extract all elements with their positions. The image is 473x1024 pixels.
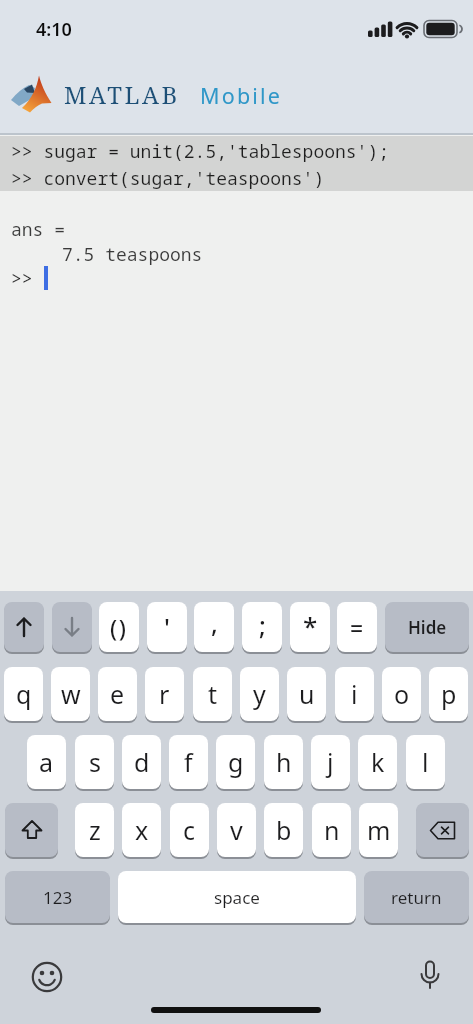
button[interactable]: o [382, 667, 421, 723]
staticText: , [211, 606, 218, 640]
staticText: b [276, 813, 292, 847]
staticText: r [159, 677, 170, 711]
staticText: 4:10 [36, 17, 72, 42]
staticText: s [89, 745, 101, 779]
button[interactable]: () [99, 602, 139, 654]
button[interactable]: j [311, 735, 350, 791]
button[interactable]: u [287, 667, 326, 723]
button[interactable]: q [4, 667, 43, 723]
button[interactable]: b [264, 803, 303, 859]
button[interactable]: , [194, 602, 234, 654]
button[interactable]: n [312, 803, 351, 859]
staticText: ' [164, 610, 170, 644]
staticText: >> [11, 266, 33, 291]
button[interactable]: ' [147, 602, 187, 654]
button[interactable]: k [358, 735, 397, 791]
button[interactable]: t [193, 667, 232, 723]
staticText: q [16, 677, 32, 711]
button[interactable]: g [216, 735, 255, 791]
button[interactable] [5, 803, 58, 859]
button[interactable] [52, 602, 92, 654]
staticText: = [350, 612, 364, 643]
staticText: p [441, 677, 457, 711]
button[interactable] [30, 960, 64, 994]
button[interactable]: f [169, 735, 208, 791]
button[interactable]: p [429, 667, 468, 723]
button[interactable] [415, 958, 445, 996]
button[interactable]: s [75, 735, 114, 791]
staticText: 7.5 teaspoons [62, 242, 203, 267]
staticText: () [110, 612, 128, 643]
staticText: z [89, 813, 101, 847]
staticText: t [208, 677, 218, 711]
button[interactable]: y [240, 667, 279, 723]
staticText: u [299, 677, 315, 711]
staticText: f [184, 745, 193, 779]
button[interactable]: h [264, 735, 303, 791]
button[interactable]: w [51, 667, 90, 723]
button[interactable]: m [359, 803, 398, 859]
staticText: c [183, 813, 196, 847]
staticText: MATLAB [64, 78, 180, 111]
staticText: m [367, 813, 391, 847]
button[interactable]: ; [242, 602, 282, 654]
staticText: a [39, 745, 54, 779]
button[interactable]: 123 [5, 871, 110, 925]
staticText: y [253, 677, 266, 711]
staticText: ; [259, 608, 266, 642]
staticText: v [230, 813, 243, 847]
staticText: >> convert(sugar,'teaspoons') [11, 166, 325, 191]
staticText: e [110, 677, 125, 711]
staticText: Mobile [200, 81, 283, 110]
staticText: * [303, 608, 318, 643]
staticText: d [134, 745, 150, 779]
staticText: n [324, 813, 340, 847]
button[interactable] [4, 602, 44, 654]
button[interactable]: e [98, 667, 137, 723]
staticText: j [327, 745, 334, 779]
button[interactable]: return [364, 871, 469, 925]
button[interactable]: c [170, 803, 209, 859]
button[interactable]: l [406, 735, 445, 791]
staticText: w [61, 677, 81, 711]
staticText: x [135, 813, 149, 847]
button[interactable]: d [122, 735, 161, 791]
button[interactable]: z [75, 803, 114, 859]
staticText: return [391, 886, 442, 909]
staticText: space [214, 886, 260, 909]
staticText: h [276, 745, 292, 779]
staticText: g [228, 745, 244, 779]
staticText: l [422, 745, 429, 779]
button[interactable]: * [290, 602, 330, 654]
button[interactable]: = [337, 602, 377, 654]
button[interactable]: i [335, 667, 374, 723]
staticText: >> sugar = unit(2.5,'tablespoons'); [11, 139, 389, 164]
staticText: i [351, 677, 358, 711]
staticText: Hide [408, 616, 447, 639]
button[interactable]: r [145, 667, 184, 723]
staticText: 123 [43, 886, 73, 909]
button[interactable]: v [217, 803, 256, 859]
button[interactable]: Hide [385, 602, 469, 654]
staticText: o [394, 677, 410, 711]
staticText: k [371, 745, 385, 779]
button[interactable]: a [27, 735, 66, 791]
button[interactable] [416, 803, 469, 859]
button[interactable]: space [118, 871, 356, 925]
button[interactable]: x [122, 803, 161, 859]
staticText: ans = [11, 217, 65, 242]
